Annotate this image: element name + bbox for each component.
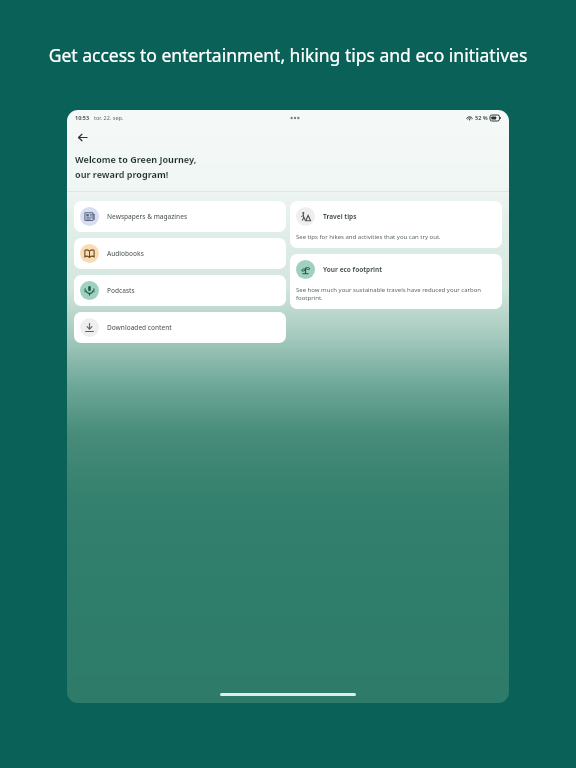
- staticText: Newspapers & magazines: [107, 212, 188, 221]
- button[interactable]: Your eco footprint: [290, 254, 502, 309]
- staticText: 52 %: [475, 114, 488, 121]
- staticText: Downloaded content: [107, 323, 172, 332]
- staticText: See tips for hikes and activities that y…: [296, 233, 496, 241]
- staticText: our reward program!: [75, 168, 169, 180]
- staticText: Audiobooks: [107, 249, 144, 258]
- staticText: 10:53: [75, 114, 90, 121]
- staticText: Travel tips: [323, 212, 357, 221]
- staticText: Get access to entertainment, hiking tips…: [24, 43, 552, 67]
- staticText: tor. 22. sep.: [94, 114, 124, 121]
- button[interactable]: Travel tips: [290, 201, 502, 248]
- button[interactable]: Newspapers & magazines: [74, 201, 286, 232]
- button[interactable]: Podcasts: [74, 275, 286, 306]
- staticText: Your eco footprint: [323, 265, 383, 274]
- button[interactable]: Back: [67, 125, 97, 150]
- button[interactable]: Downloaded content: [74, 312, 286, 343]
- staticText: Podcasts: [107, 286, 135, 295]
- staticText: Welcome to Green Journey,: [75, 153, 197, 165]
- staticText: See how much your sustainable travels ha…: [296, 286, 496, 302]
- button[interactable]: Audiobooks: [74, 238, 286, 269]
